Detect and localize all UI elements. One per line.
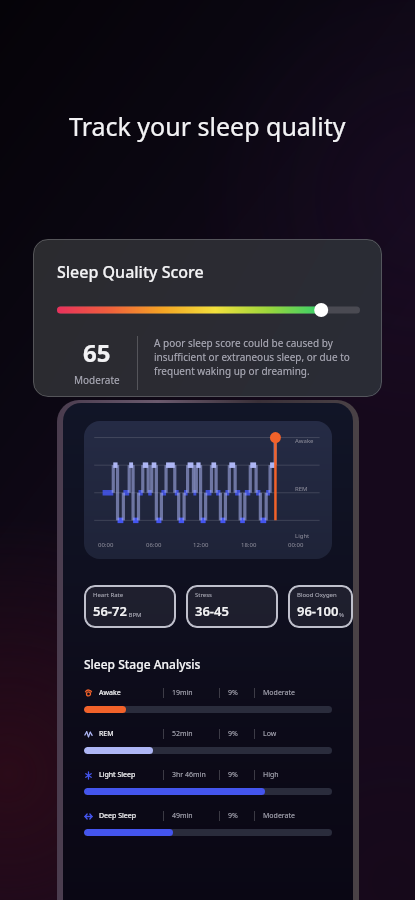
staticText: 9% — [228, 770, 238, 780]
staticText: BPM — [127, 611, 142, 619]
staticText: Light Sleep — [99, 770, 136, 780]
button[interactable]: Sleep Quality Score — [33, 239, 382, 397]
staticText: 36-45 — [195, 602, 229, 620]
staticText: 9% — [228, 729, 238, 739]
staticText: Low — [263, 729, 277, 739]
staticText: 06:00 — [146, 541, 162, 549]
button[interactable]: Stress — [186, 585, 278, 628]
staticText: 9% — [228, 811, 238, 821]
staticText: Moderate — [263, 811, 295, 821]
staticText: 3hr 46min — [172, 770, 206, 780]
staticText: Heart Rate — [93, 591, 124, 599]
staticText: Sleep Quality Score — [57, 261, 204, 283]
button[interactable]: Deep Sleep icon — [84, 809, 332, 836]
staticText: 00:00 — [288, 541, 304, 549]
staticText: Deep Sleep — [99, 811, 136, 821]
staticText: REM — [295, 485, 308, 493]
staticText: Moderate — [74, 373, 120, 387]
staticText: Moderate — [263, 688, 295, 698]
staticText: High — [263, 770, 279, 780]
staticText: 52min — [172, 729, 193, 739]
staticText: A poor sleep score could be caused by in… — [154, 336, 360, 378]
button[interactable]: Awake icon — [84, 686, 332, 713]
staticText: 19min — [172, 688, 193, 698]
staticText: Awake — [99, 688, 121, 698]
button[interactable]: Blood Oxygen — [288, 585, 353, 628]
button[interactable]: Light Sleep icon — [84, 768, 332, 795]
other: Light Sleep icon — [84, 771, 93, 780]
other: Awake icon — [84, 689, 93, 698]
staticText: Stress — [195, 591, 212, 599]
staticText: 96-100 — [297, 602, 339, 620]
button[interactable]: Awake — [84, 421, 332, 559]
staticText: Light — [295, 532, 310, 540]
staticText: Track your sleep quality — [69, 109, 346, 143]
staticText: 18:00 — [241, 541, 257, 549]
staticText: 9% — [228, 688, 238, 698]
staticText: 56-72 — [93, 602, 127, 620]
staticText: REM — [99, 729, 114, 739]
other: Deep Sleep icon — [84, 812, 93, 821]
button[interactable]: Heart Rate — [84, 585, 176, 628]
staticText: 65 — [83, 336, 111, 369]
other: REM icon — [84, 730, 93, 739]
staticText: 49min — [172, 811, 193, 821]
button[interactable]: REM icon — [84, 727, 332, 754]
staticText: Sleep Stage Analysis — [84, 656, 201, 672]
staticText: Blood Oxygen — [297, 591, 337, 599]
staticText: 12:00 — [193, 541, 209, 549]
staticText: % — [339, 611, 344, 619]
staticText: Awake — [295, 437, 314, 445]
staticText: 00:00 — [98, 541, 114, 549]
